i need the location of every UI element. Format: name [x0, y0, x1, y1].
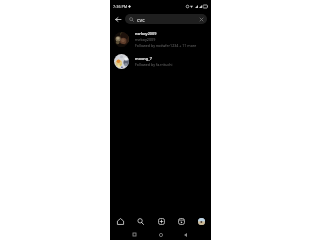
staticText: cvc	[137, 16, 145, 23]
button[interactable]: Home	[155, 229, 166, 240]
button[interactable]: Recents	[129, 229, 140, 240]
staticText: Followed by nodwfer1234 + 11 more	[135, 43, 197, 48]
staticText: nsrboy2009	[135, 37, 156, 42]
button[interactable]: Profile	[193, 214, 209, 228]
button[interactable]: Home	[112, 214, 128, 228]
button[interactable]: Clear	[198, 16, 204, 22]
staticText: nsrboy2009	[135, 31, 157, 36]
staticText: Followed by fa.rrituchi	[135, 62, 173, 67]
staticText: moong_7	[135, 56, 152, 61]
button[interactable]: Create	[153, 214, 169, 228]
staticText: 7:36 PM	[113, 4, 128, 9]
button[interactable]: Reels	[173, 214, 189, 228]
button[interactable]: Search	[132, 214, 148, 228]
button[interactable]: nsrboy2009	[110, 30, 211, 48]
button[interactable]: moong_7	[110, 52, 211, 70]
button[interactable]: Back	[110, 13, 125, 25]
button[interactable]: cvc	[125, 14, 207, 24]
button[interactable]: Back	[180, 229, 191, 240]
